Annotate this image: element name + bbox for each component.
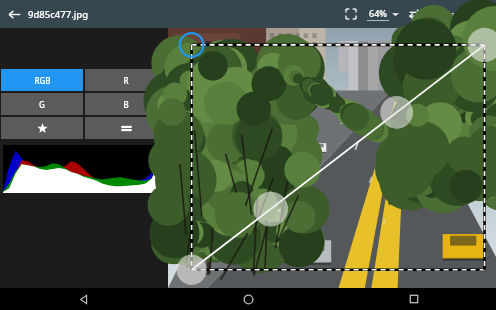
button[interactable]: Favorite <box>1 117 83 139</box>
button[interactable]: Fullscreen <box>338 1 364 27</box>
staticText: 9d85c477.jpg <box>28 8 89 21</box>
button[interactable]: Menu <box>85 117 167 139</box>
button[interactable]: Recent apps <box>331 288 496 310</box>
button[interactable]: Histogram <box>3 145 158 193</box>
button[interactable]: Home <box>166 288 331 310</box>
button[interactable]: Back <box>0 0 28 28</box>
button[interactable]: G <box>1 93 83 115</box>
button[interactable]: APPLY <box>428 8 472 21</box>
button[interactable]: B <box>85 93 167 115</box>
staticText: R <box>123 75 129 86</box>
staticText: APPLY <box>446 10 469 20</box>
staticText: B <box>123 99 129 110</box>
staticText: 64% <box>369 7 387 19</box>
button[interactable]: More options <box>472 3 494 25</box>
staticText: G <box>39 99 45 110</box>
button[interactable]: R <box>85 69 167 91</box>
button[interactable]: Compare <box>402 1 428 27</box>
button[interactable]: RGB <box>1 69 83 91</box>
staticText: RGB <box>34 75 51 86</box>
button[interactable]: Back <box>0 288 166 310</box>
button[interactable]: 64% <box>364 7 402 21</box>
